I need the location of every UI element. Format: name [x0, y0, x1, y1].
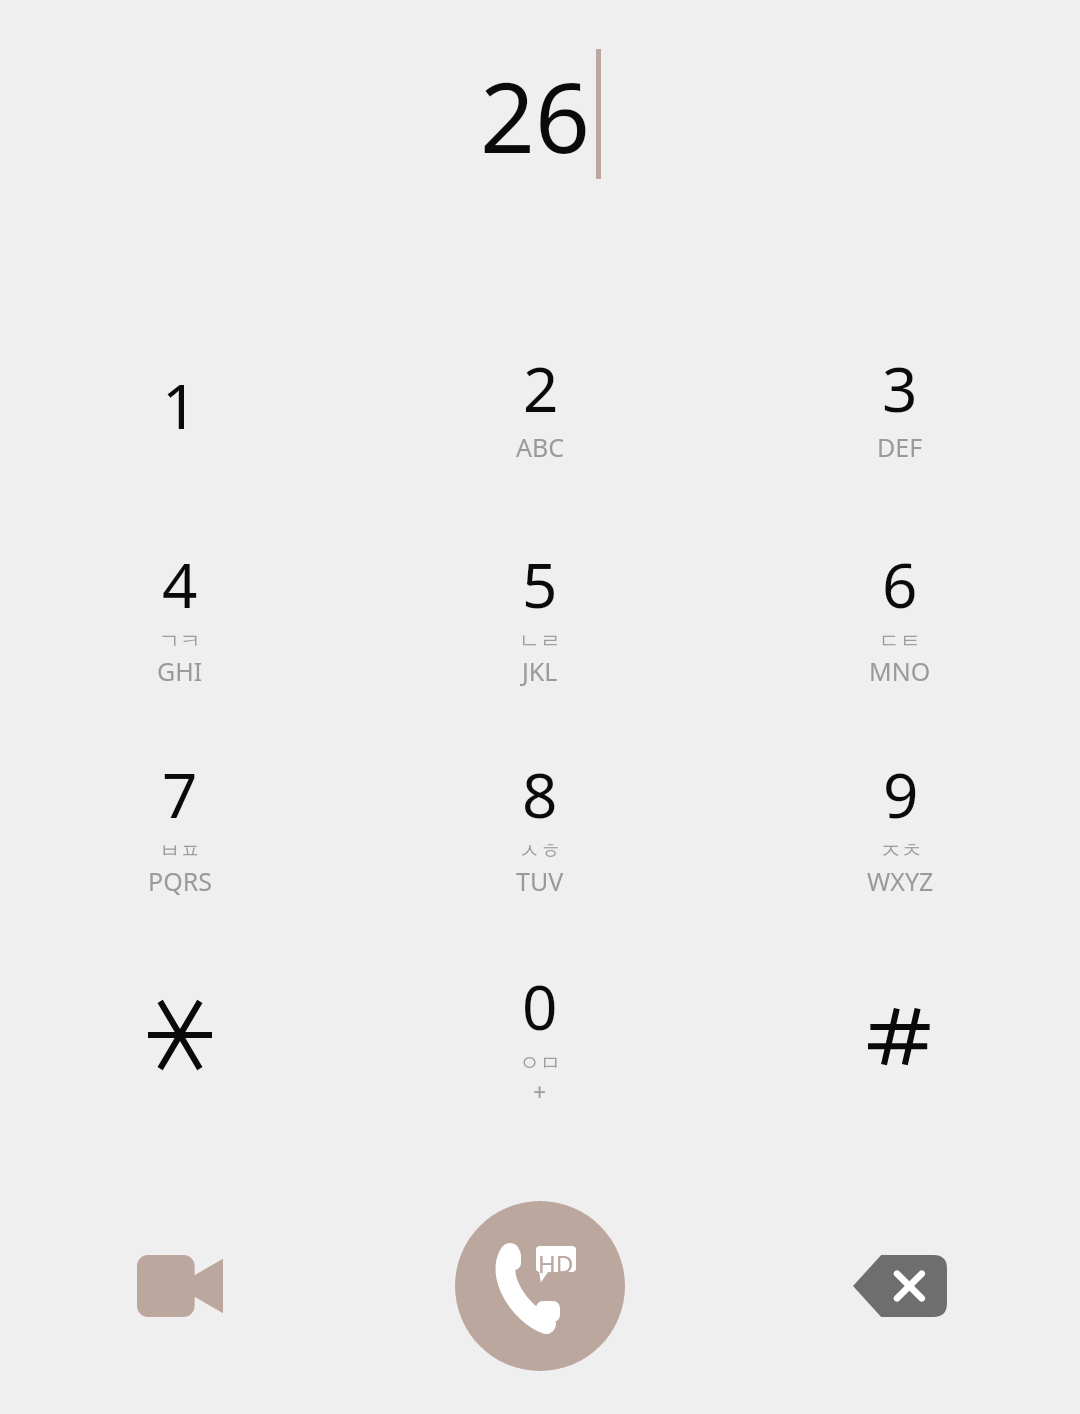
- staticText: JKL: [522, 654, 558, 688]
- staticText: 26: [480, 50, 590, 181]
- button[interactable]: star: [0, 930, 360, 1140]
- staticText: 9: [883, 752, 919, 836]
- staticText: 4: [162, 542, 198, 626]
- staticText: GHI: [157, 654, 203, 688]
- button[interactable]: 2: [360, 300, 720, 510]
- staticText: ㄴㄹ: [519, 628, 561, 654]
- button[interactable]: 7: [0, 720, 360, 930]
- staticText: ㅈㅊ: [880, 838, 922, 864]
- staticText: MNO: [869, 654, 931, 688]
- button[interactable]: 8: [360, 720, 720, 930]
- staticText: 8: [522, 752, 558, 836]
- staticText: 1: [162, 363, 198, 447]
- staticText: 0: [522, 964, 558, 1048]
- staticText: DEF: [877, 430, 923, 464]
- staticText: ㅇㅁ: [519, 1050, 561, 1076]
- staticText: ㅅㅎ: [519, 838, 561, 864]
- button[interactable]: 3: [720, 300, 1080, 510]
- staticText: 7: [162, 752, 198, 836]
- staticText: TUV: [516, 864, 564, 898]
- button[interactable]: 1: [0, 300, 360, 510]
- button[interactable]: 9: [720, 720, 1080, 930]
- staticText: 5: [522, 542, 558, 626]
- button[interactable]: 0: [360, 930, 720, 1140]
- button[interactable]: 6: [720, 510, 1080, 720]
- button[interactable]: Backspace: [720, 1186, 1080, 1386]
- staticText: HD: [538, 1247, 574, 1280]
- staticText: ABC: [516, 430, 565, 464]
- button[interactable]: 4: [0, 510, 360, 720]
- staticText: ㄷㅌ: [879, 628, 921, 654]
- button[interactable]: Video call: [0, 1186, 360, 1386]
- button[interactable]: 5: [360, 510, 720, 720]
- staticText: 6: [882, 542, 918, 626]
- staticText: PQRS: [148, 864, 212, 898]
- staticText: ㄱㅋ: [159, 628, 201, 654]
- staticText: 3: [882, 346, 918, 430]
- staticText: ㅂㅍ: [159, 838, 201, 864]
- button[interactable]: hash: [720, 930, 1080, 1140]
- staticText: WXYZ: [867, 864, 934, 898]
- staticText: 2: [523, 346, 559, 430]
- button[interactable]: Call: [455, 1201, 625, 1371]
- staticText: +: [533, 1076, 547, 1107]
